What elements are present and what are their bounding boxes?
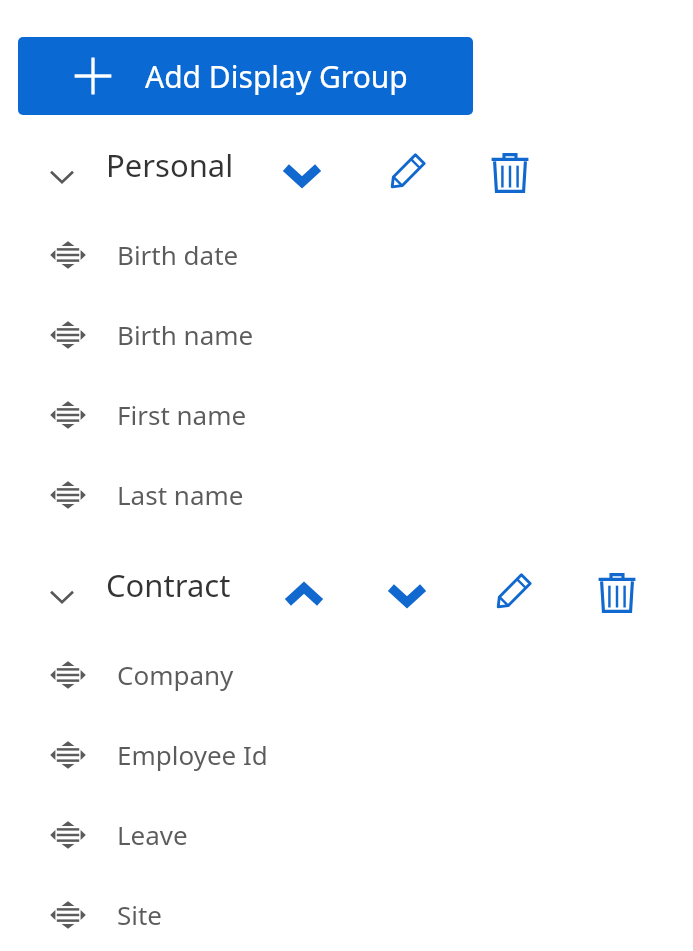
button[interactable]: [0, 889, 693, 941]
button[interactable]: Personal: [106, 144, 234, 186]
button[interactable]: [0, 469, 693, 521]
button[interactable]: Move Personal down: [279, 152, 325, 198]
button[interactable]: Add Display Group: [18, 37, 473, 115]
staticText: Company: [117, 657, 234, 692]
staticText: Employee Id: [117, 737, 268, 772]
button[interactable]: Collapse Personal: [40, 155, 84, 199]
staticText: Last name: [117, 477, 244, 512]
staticText: Site: [117, 897, 163, 932]
button[interactable]: Delete Personal: [487, 150, 533, 196]
button[interactable]: [0, 649, 693, 701]
button[interactable]: Move Contract down: [384, 572, 430, 618]
button[interactable]: [0, 229, 693, 281]
button[interactable]: [0, 389, 693, 441]
staticText: First name: [117, 397, 247, 432]
button[interactable]: [0, 809, 693, 861]
button[interactable]: Collapse Contract: [40, 575, 84, 619]
button[interactable]: Delete Contract: [594, 570, 640, 616]
button[interactable]: Edit Personal: [383, 150, 429, 196]
staticText: Birth date: [117, 237, 239, 272]
staticText: Add Display Group: [145, 56, 408, 97]
staticText: Birth name: [117, 317, 254, 352]
button[interactable]: Edit Contract: [489, 570, 535, 616]
button[interactable]: Move Contract up: [281, 572, 327, 618]
button[interactable]: [0, 729, 693, 781]
button[interactable]: [0, 309, 693, 361]
staticText: Leave: [117, 817, 188, 852]
button[interactable]: Contract: [106, 564, 231, 606]
